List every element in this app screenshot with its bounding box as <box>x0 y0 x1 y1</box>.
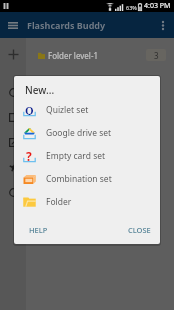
button[interactable]: Folder <box>14 190 160 213</box>
staticText: 4:03 PM <box>144 1 171 11</box>
staticText: Quizlet set <box>46 104 89 116</box>
button[interactable]: ? <box>14 144 160 167</box>
button[interactable]: Menu item 2 <box>0 105 26 130</box>
button[interactable]: Add <box>0 38 26 70</box>
button[interactable]: Folder level-1 <box>26 38 174 72</box>
button[interactable]: Menu item 5 <box>0 180 26 205</box>
staticText: 3 <box>154 50 159 61</box>
button[interactable]: Combination set <box>14 167 160 190</box>
button[interactable]: CLOSE <box>122 220 156 240</box>
button[interactable]: Menu item 3 <box>0 130 26 155</box>
staticText: Empty card set <box>46 150 106 162</box>
button[interactable]: HELP <box>23 220 53 240</box>
button[interactable]: Open navigation drawer <box>2 12 24 38</box>
staticText: Q <box>25 103 34 116</box>
button[interactable]: Menu item 1 <box>0 80 26 105</box>
staticText: Folder <box>46 196 72 208</box>
button[interactable]: More options <box>152 12 174 38</box>
staticText: ? <box>26 148 32 161</box>
staticText: 63% <box>126 4 137 11</box>
staticText: Flashcards Buddy <box>27 19 106 31</box>
staticText: HELP <box>29 225 48 235</box>
staticText: Folder level-1 <box>48 50 99 61</box>
staticText: New... <box>25 83 55 97</box>
button[interactable]: Google drive set <box>14 121 160 144</box>
button[interactable]: Q <box>14 98 160 121</box>
button[interactable]: Menu item 4 <box>0 155 26 180</box>
staticText: CLOSE <box>128 225 151 235</box>
staticText: Combination set <box>46 173 112 185</box>
staticText: Google drive set <box>46 127 112 139</box>
